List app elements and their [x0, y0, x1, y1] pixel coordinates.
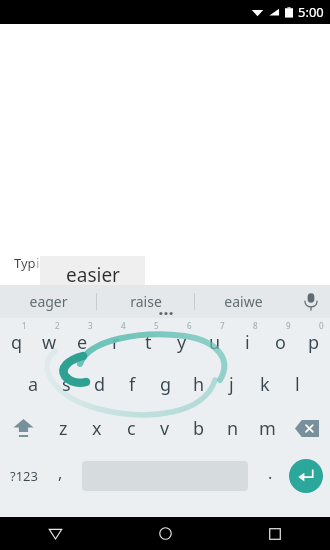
staticText: ?123	[10, 467, 38, 485]
staticText: i	[245, 330, 250, 355]
button[interactable]: eager	[0, 285, 96, 318]
button[interactable]: ,	[48, 450, 72, 502]
staticText: w	[42, 330, 57, 355]
staticText: 1	[22, 320, 27, 331]
staticText: d	[94, 372, 106, 397]
button[interactable]: ?123	[0, 450, 48, 502]
button[interactable]: s	[50, 362, 83, 406]
staticText: k	[260, 372, 270, 397]
staticText: m	[259, 416, 276, 441]
staticText: p	[308, 330, 320, 355]
button[interactable]: Backspace	[284, 406, 330, 450]
button[interactable]: h	[182, 362, 215, 406]
button[interactable]: 6	[165, 318, 198, 362]
button[interactable]: b	[182, 406, 216, 450]
staticText: e	[77, 330, 88, 355]
staticText: s	[62, 372, 71, 397]
staticText: raise	[130, 292, 162, 311]
staticText: b	[193, 416, 205, 441]
button[interactable]: Shift	[0, 406, 46, 450]
staticText: x	[92, 416, 102, 441]
staticText: ing is	[36, 254, 69, 272]
button[interactable]: 9	[264, 318, 297, 362]
staticText: a	[28, 372, 39, 397]
staticText: 6	[187, 320, 192, 331]
button[interactable]: Voice input	[292, 285, 330, 318]
staticText: 9	[286, 320, 291, 331]
staticText: f	[129, 372, 136, 397]
button[interactable]: Home	[110, 517, 220, 550]
button[interactable]: 2	[33, 318, 66, 362]
staticText: 3	[88, 320, 93, 331]
button[interactable]: d	[83, 362, 116, 406]
button[interactable]: n	[216, 406, 250, 450]
staticText: 5	[154, 320, 159, 331]
button[interactable]: Back	[0, 517, 110, 550]
staticText: g	[160, 372, 172, 397]
button[interactable]: c	[114, 406, 148, 450]
button[interactable]: 0	[297, 318, 330, 362]
button[interactable]: k	[248, 362, 281, 406]
button[interactable]: v	[148, 406, 182, 450]
button[interactable]: easier	[40, 256, 145, 294]
button[interactable]: z	[46, 406, 80, 450]
staticText: l	[295, 372, 300, 397]
staticText: Typ	[14, 254, 36, 272]
button[interactable]: a	[16, 362, 50, 406]
staticText: 7	[220, 320, 225, 331]
staticText: eaiwe	[224, 292, 263, 311]
staticText: ,	[58, 462, 63, 484]
button[interactable]: Recent apps	[220, 517, 330, 550]
staticText: j	[229, 372, 234, 397]
button[interactable]: eaiwe	[195, 285, 292, 318]
staticText: 4	[121, 320, 126, 331]
button[interactable]: .	[258, 450, 282, 502]
staticText: 2	[55, 320, 60, 331]
staticText: v	[160, 416, 170, 441]
staticText: t	[145, 330, 152, 355]
staticText: o	[275, 330, 286, 355]
staticText: q	[11, 330, 23, 355]
staticText: 0	[319, 320, 324, 331]
staticText: eager	[29, 292, 68, 311]
button[interactable]: m	[250, 406, 284, 450]
staticText: easier	[66, 262, 120, 288]
button[interactable]: f	[116, 362, 149, 406]
button[interactable]: 7	[198, 318, 231, 362]
staticText: r	[112, 330, 120, 355]
staticText: .	[268, 462, 273, 484]
button[interactable]: 1	[0, 318, 33, 362]
button[interactable]: x	[80, 406, 114, 450]
button[interactable]: 5	[132, 318, 165, 362]
button[interactable]: 3	[66, 318, 99, 362]
button[interactable]: Enter	[282, 450, 330, 502]
staticText: 8	[253, 320, 258, 331]
staticText: c	[127, 416, 136, 441]
button[interactable]: raise	[97, 285, 194, 318]
button[interactable]: 8	[231, 318, 264, 362]
staticText: z	[59, 416, 68, 441]
button[interactable]: j	[215, 362, 248, 406]
staticText: 5:00	[298, 3, 324, 21]
button[interactable]: g	[149, 362, 182, 406]
staticText: n	[227, 416, 239, 441]
staticText: y	[177, 330, 187, 355]
button[interactable]: 4	[99, 318, 132, 362]
button[interactable]: l	[281, 362, 314, 406]
staticText: h	[193, 372, 205, 397]
staticText: u	[209, 330, 221, 355]
